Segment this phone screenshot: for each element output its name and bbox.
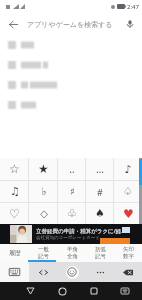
button[interactable]: ♪ [114,158,142,180]
staticText: … [96,162,104,176]
staticText: 矢印 [123,246,134,253]
button[interactable]: ☆ [0,158,29,180]
button[interactable]: Symbols [29,262,58,282]
button[interactable]: ♧ [58,203,86,224]
staticText: アプリやゲームを検索する [27,20,113,29]
staticText: ‥ [69,162,75,176]
button[interactable]: Recents [83,282,105,300]
button[interactable]: Back [19,282,41,300]
staticText: ◇ [40,208,48,220]
staticText: 会社貸与のコーポレートカード [36,235,100,241]
button[interactable]: 立替経費の申請・精算がラクに/経... [0,224,142,244]
staticText: ♫ [10,185,20,198]
button[interactable]: 半角 [58,244,86,262]
button[interactable]: Backspace [114,262,142,282]
button[interactable]: ♥ [114,203,142,224]
staticText: 立替経費の申請・精算がラクに/経... [36,227,126,235]
staticText: ☆ [9,162,20,176]
button[interactable]: Keyboard [0,262,29,282]
button[interactable]: ♠ [86,203,114,224]
staticText: 履歴 [9,249,21,257]
staticText: # [97,186,103,198]
button[interactable] [0,95,142,115]
staticText: 全角 [67,253,78,260]
button[interactable]: ★ [29,158,58,180]
button[interactable]: ♤ [114,181,142,202]
staticText: ♯ [70,186,75,198]
staticText: 数字 [123,253,134,260]
button[interactable]: ♫ [0,181,29,202]
button[interactable]: ♯ [58,181,86,202]
staticText: 2:47 [127,3,139,11]
staticText: 記号 [38,253,49,260]
button[interactable]: 履歴 [0,244,29,262]
button[interactable]: ♭ [29,181,58,202]
button[interactable]: Voice search [122,16,138,32]
staticText: ★ [38,162,49,176]
staticText: ♭ [41,185,47,198]
button[interactable] [0,55,142,75]
button[interactable]: # [86,181,114,202]
staticText: 記号 [95,253,106,260]
button[interactable]: ◇ [29,203,58,224]
staticText: ♧ [67,207,77,220]
button[interactable]: Home [51,282,73,300]
button[interactable]: More [86,262,114,282]
button[interactable]: … [86,158,114,180]
button[interactable]: ♡ [0,203,29,224]
button[interactable]: Back [5,16,21,32]
staticText: ♪ [124,163,132,176]
staticText: ♠ [95,207,105,220]
button[interactable] [0,75,142,95]
button[interactable]: 矢印 [114,244,142,262]
button[interactable]: Emoji [58,262,86,282]
staticText: ♤ [123,185,133,198]
staticText: 半角 [67,246,78,253]
staticText: 括弧 [95,246,106,253]
staticText: ♡ [9,207,20,221]
button[interactable]: ‥ [58,158,86,180]
staticText: 一般 [38,246,49,253]
staticText: ♥ [123,207,134,221]
button[interactable]: 括弧 [86,244,114,262]
button[interactable]: Switch input method [114,282,136,300]
button[interactable]: 一般 [29,244,58,262]
button[interactable] [0,35,142,55]
